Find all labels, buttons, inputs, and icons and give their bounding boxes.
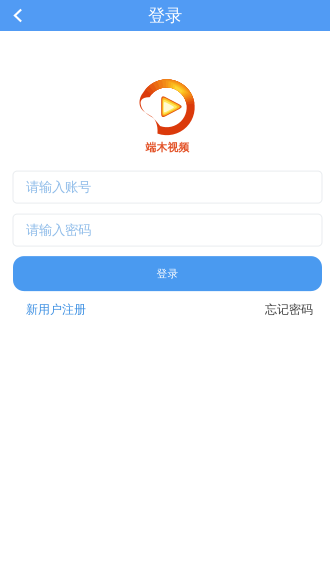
- staticText: 登录: [148, 5, 182, 26]
- staticText: 新用户注册: [26, 302, 86, 317]
- button[interactable]: 请输入密码: [13, 214, 322, 246]
- button[interactable]: Back: [0, 0, 30, 31]
- staticText: 忘记密码: [265, 302, 313, 317]
- staticText: 端木视频: [145, 141, 189, 154]
- staticText: 登录: [156, 267, 178, 280]
- button[interactable]: 登录: [13, 256, 322, 291]
- button[interactable]: 忘记密码: [265, 302, 313, 317]
- button[interactable]: 新用户注册: [26, 302, 86, 317]
- staticText: 请输入密码: [26, 222, 91, 238]
- button[interactable]: 请输入账号: [13, 171, 322, 203]
- staticText: 请输入账号: [26, 179, 91, 195]
